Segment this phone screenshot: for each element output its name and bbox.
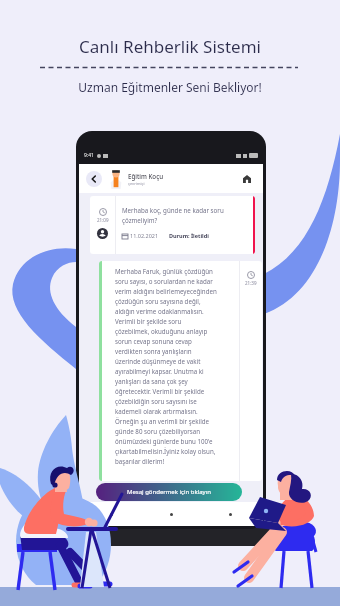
button[interactable]: Home bbox=[238, 170, 256, 188]
staticText: Canlı Rehberlik Sistemi bbox=[79, 35, 261, 58]
button[interactable]: Merhaba Faruk, günlük çözdüğün soru sayı… bbox=[99, 261, 262, 481]
staticText: Merhaba Faruk, günlük çözdüğün soru sayı… bbox=[115, 267, 217, 466]
staticText: 21:39 bbox=[245, 280, 257, 286]
button[interactable]: Back bbox=[86, 171, 102, 187]
staticText: Durum: İletildi bbox=[169, 232, 209, 239]
staticText: çevrimiçi bbox=[128, 181, 145, 186]
staticText: Mesaj göndermek için tıklayın bbox=[127, 488, 211, 496]
button[interactable]: 21:09 bbox=[90, 196, 255, 254]
staticText: 11.02.2021 bbox=[130, 232, 159, 239]
staticText: Uzman Eğitmenler Seni Bekliyor! bbox=[78, 79, 262, 95]
staticText: 9:41 bbox=[84, 152, 94, 159]
button[interactable]: Mesaj göndermek için tıklayın bbox=[96, 483, 242, 501]
staticText: Merhaba koç, günde ne kadar soru çözmeli… bbox=[122, 206, 224, 225]
staticText: Eğitim Koçu bbox=[128, 172, 164, 180]
staticText: 21:09 bbox=[97, 217, 109, 223]
